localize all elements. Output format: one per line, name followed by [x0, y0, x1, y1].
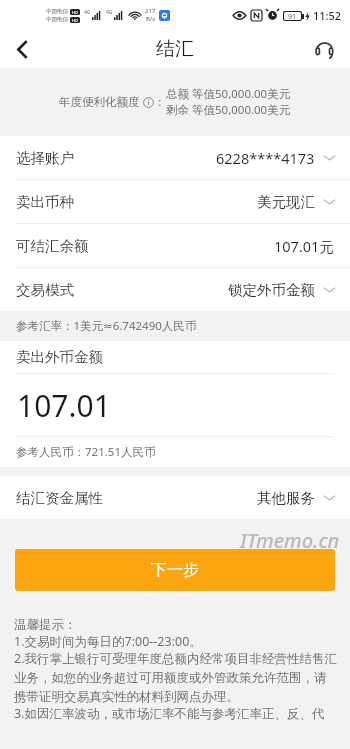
button[interactable]: 交易模式: [0, 268, 350, 311]
staticText: 选择账户: [16, 149, 74, 167]
staticText: 2.我行掌上银行可受理年度总额内经常项目非经营性结售汇业务，如您的业务超过可用额…: [14, 650, 338, 705]
button[interactable]: 可结汇余额: [0, 224, 350, 267]
staticText: 可结汇余额: [16, 237, 89, 255]
staticText: 剩余 等值50,000.00美元: [166, 102, 291, 118]
button[interactable]: 下一步: [15, 549, 335, 591]
staticText: 年度便利化额度: [59, 95, 140, 109]
staticText: 参考汇率：1美元≈6.742490人民币: [16, 318, 197, 334]
staticText: B/s: [146, 15, 156, 23]
button[interactable]: 107.01: [0, 374, 350, 436]
staticText: 美元现汇: [257, 193, 315, 211]
staticText: 4G: [84, 9, 91, 16]
staticText: HD: [72, 10, 78, 15]
button[interactable]: 选择账户: [0, 136, 350, 179]
staticText: 温馨提示：: [14, 617, 77, 633]
staticText: 参考人民币：721.51人民币: [16, 444, 156, 460]
staticText: 11:52: [313, 8, 342, 23]
staticText: 中国电信: [46, 8, 68, 15]
staticText: 结汇资金属性: [16, 489, 103, 507]
staticText: ：: [154, 95, 166, 109]
staticText: ITmemo.cn: [240, 527, 340, 554]
button[interactable]: Customer service: [304, 30, 344, 68]
staticText: 下一步: [151, 560, 199, 580]
staticText: 结汇: [156, 37, 194, 61]
button[interactable]: Back: [0, 30, 44, 68]
button[interactable]: 卖出币种: [0, 180, 350, 223]
staticText: 卖出币种: [16, 193, 74, 211]
staticText: 91: [288, 12, 297, 20]
staticText: 217: [145, 7, 156, 15]
staticText: 中国电信: [46, 16, 68, 23]
staticText: 卖出外币金额: [16, 348, 103, 366]
staticText: HD: [72, 18, 78, 23]
staticText: 总额 等值50,000.00美元: [166, 86, 291, 102]
button[interactable]: 结汇资金属性: [0, 476, 350, 519]
staticText: 107.01元: [274, 236, 334, 256]
staticText: 4G: [106, 9, 113, 16]
staticText: 锁定外币金额: [228, 281, 315, 299]
staticText: 107.01: [17, 385, 111, 426]
staticText: 其他服务: [257, 489, 315, 507]
staticText: 3.如因汇率波动，或市场汇率不能与参考汇率正、反、代: [14, 705, 325, 722]
staticText: 6228****4173: [216, 148, 315, 168]
staticText: 1.交易时间为每日的7:00--23:00。: [14, 633, 202, 650]
staticText: 交易模式: [16, 281, 74, 299]
